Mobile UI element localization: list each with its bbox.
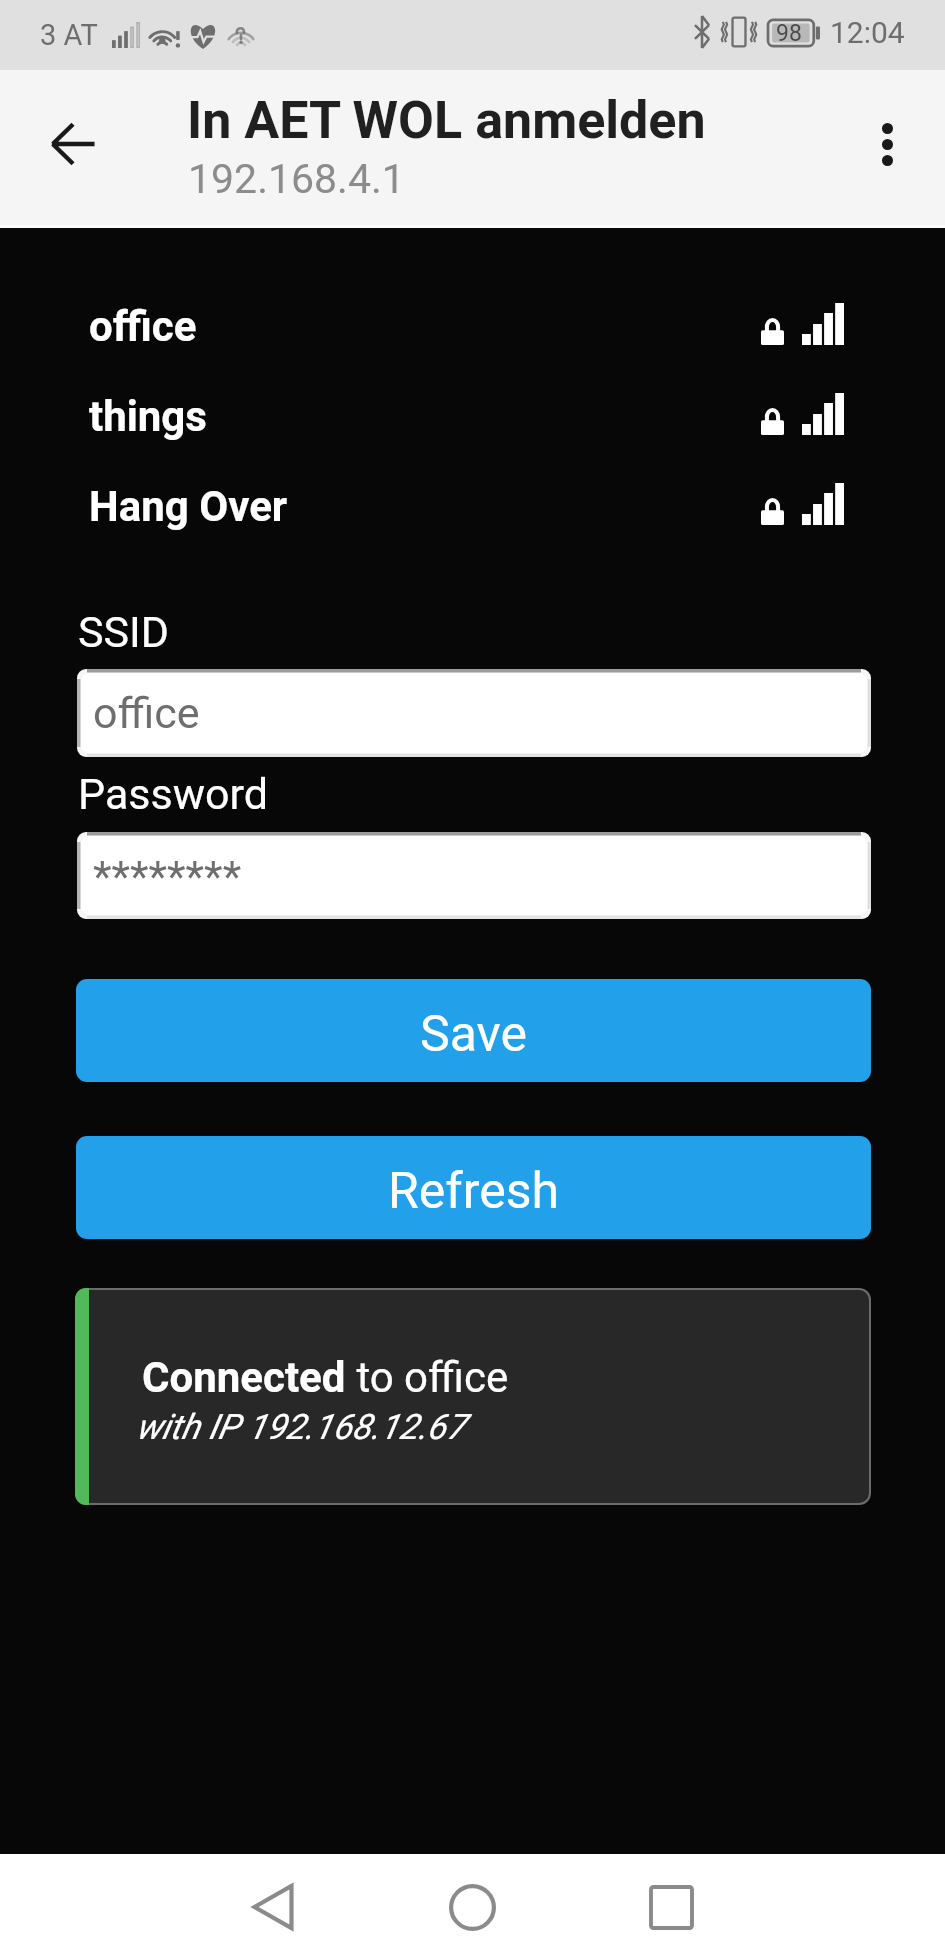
staticText: Save [420,1005,527,1064]
staticText: Hang Over [89,482,288,531]
staticText: In AET WOL anmelden [187,90,706,151]
button[interactable]: ******** [77,832,871,919]
staticText: 3 AT [40,18,98,52]
button[interactable]: Home [422,1854,522,1960]
staticText: with IP 192.168.12.67 [136,1407,465,1448]
button[interactable]: More options [845,102,929,186]
staticText: 98 [776,20,802,47]
staticText: 12:04 [830,15,905,50]
button[interactable]: Hang Over [0,461,945,551]
button[interactable]: office [77,669,871,757]
button[interactable]: Recent apps [621,1854,721,1960]
staticText: ******** [93,851,242,901]
staticText: office [93,688,200,738]
staticText: office [89,302,197,351]
button[interactable]: things [0,371,945,461]
staticText: SSID [78,607,169,657]
staticText: to office [346,1353,509,1402]
staticText: Connected [142,1353,346,1402]
button[interactable]: Back [223,1854,323,1960]
button[interactable]: Navigate up [27,98,119,190]
staticText: Password [78,769,268,819]
staticText: things [89,392,207,441]
button[interactable]: office [0,281,945,371]
button[interactable]: Refresh [76,1136,871,1239]
button[interactable]: Save [76,979,871,1082]
staticText: Refresh [388,1162,560,1221]
staticText: 192.168.4.1 [188,155,405,203]
